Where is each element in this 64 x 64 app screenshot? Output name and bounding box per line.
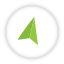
- button[interactable]: Navigation: [0, 0, 64, 64]
